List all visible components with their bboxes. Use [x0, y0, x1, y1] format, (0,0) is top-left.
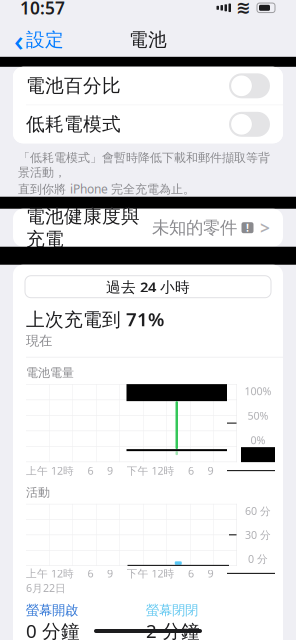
staticText: 直到你將 iPhone 完全充電為止。	[18, 181, 195, 197]
staticText: 現在	[26, 332, 52, 349]
staticText: ‹	[14, 20, 24, 59]
staticText: 過去 24 小時	[106, 277, 190, 296]
staticText: 6月22日	[26, 581, 66, 595]
staticText: 0 分鐘	[26, 618, 80, 640]
staticText: 6	[188, 463, 194, 478]
staticText: >	[260, 216, 270, 239]
staticText: 未知的零件	[152, 217, 237, 238]
button[interactable]: ‹	[6, 23, 72, 57]
staticText: 2 分鐘	[146, 618, 200, 640]
staticText: 上午 12時	[26, 566, 74, 580]
staticText: ≋	[236, 0, 251, 18]
staticText: 下午 12時	[126, 566, 174, 580]
staticText: 30 分	[245, 528, 271, 542]
staticText: 低耗電模式	[26, 113, 121, 136]
staticText: 9	[107, 566, 113, 580]
staticText: 上次充電到 71%	[26, 307, 164, 331]
staticText: 9	[207, 566, 213, 580]
staticText: 0%	[250, 433, 265, 447]
staticText: 6	[188, 566, 194, 580]
staticText: 螢幕開啟	[26, 602, 78, 618]
staticText: 電池電量	[26, 365, 74, 380]
staticText: 螢幕閉閉	[146, 602, 198, 618]
staticText: 50%	[247, 408, 268, 423]
button[interactable]: 過去 24 小時	[25, 276, 271, 298]
staticText: 6	[87, 566, 93, 580]
button[interactable]: 低耗電模式	[13, 105, 283, 143]
staticText: 0 分	[248, 552, 268, 566]
button[interactable]: 電池百分比	[13, 67, 283, 105]
staticText: 60 分	[245, 504, 271, 518]
staticText: 活動	[26, 485, 50, 500]
staticText: !	[246, 221, 249, 235]
staticText: 100%	[244, 384, 271, 398]
button[interactable]: 電池健康度與充電	[13, 209, 283, 247]
staticText: 下午 12時	[126, 463, 174, 478]
staticText: 上午 12時	[26, 463, 74, 478]
staticText: 6	[87, 463, 93, 478]
staticText: 9	[207, 463, 213, 478]
staticText: 電池百分比	[26, 74, 121, 97]
staticText: 9	[107, 463, 113, 478]
staticText: 10:57	[20, 0, 65, 19]
staticText: 電池健康度與充電	[26, 205, 140, 251]
staticText: 電池	[129, 28, 167, 51]
staticText: 設定	[26, 28, 64, 51]
staticText: 「低耗電模式」會暫時降低下載和郵件擷取等背景活動，	[18, 150, 270, 180]
